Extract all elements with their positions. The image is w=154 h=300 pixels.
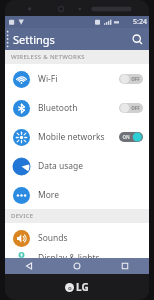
button[interactable]: Search: [125, 28, 149, 50]
staticText: LG: [76, 280, 89, 294]
button[interactable]: Mobile networks: [5, 122, 149, 151]
staticText: OFF: [131, 76, 140, 82]
staticText: Bluetooth: [38, 102, 119, 114]
staticText: o: [68, 284, 72, 292]
staticText: More: [38, 189, 143, 201]
button[interactable]: Data usage: [5, 151, 149, 180]
button[interactable]: More: [5, 180, 149, 209]
button[interactable]: Back: [5, 258, 53, 274]
staticText: ON: [122, 134, 130, 140]
staticText: Wi-Fi: [38, 73, 119, 85]
button[interactable]: Display & lights: [5, 252, 149, 258]
staticText: Mobile networks: [38, 131, 119, 143]
staticText: Sounds: [38, 232, 143, 244]
button[interactable]: Recent apps: [101, 258, 149, 274]
button[interactable]: Home: [53, 258, 101, 274]
button[interactable]: Wi-Fi: [5, 64, 149, 93]
button[interactable]: Toggle off: [119, 102, 143, 114]
staticText: DEVICE: [11, 212, 34, 220]
button[interactable]: Toggle off: [119, 73, 143, 85]
staticText: 5:24: [133, 17, 147, 27]
button[interactable]: Bluetooth: [5, 93, 149, 122]
staticText: Display & lights: [38, 252, 143, 258]
button[interactable]: Sounds: [5, 223, 149, 252]
staticText: Data usage: [38, 160, 143, 172]
staticText: Settings: [13, 32, 55, 47]
staticText: OFF: [131, 105, 140, 111]
staticText: WIRELESS & NETWORKS: [11, 53, 85, 61]
button[interactable]: Toggle on: [119, 131, 143, 143]
